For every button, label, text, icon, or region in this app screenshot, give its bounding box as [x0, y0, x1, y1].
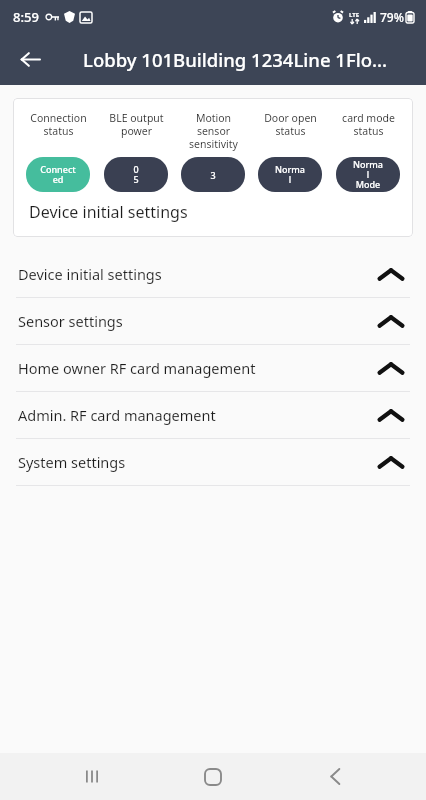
staticText: Device initial settings: [29, 201, 188, 223]
staticText: Connect ed: [40, 163, 76, 186]
button[interactable]: Norma l Mode: [336, 157, 400, 192]
staticText: card mode status: [342, 111, 395, 138]
staticText: Norma l: [275, 163, 305, 186]
button[interactable]: Norma l: [258, 157, 322, 192]
staticText: Motion sensor sensitivity: [189, 111, 238, 151]
button[interactable]: System settings: [0, 439, 426, 485]
button[interactable]: 0 5: [104, 157, 168, 192]
button[interactable]: Device initial settings: [0, 251, 426, 297]
button[interactable]: Home: [183, 753, 243, 800]
staticText: Device initial settings: [18, 264, 378, 284]
staticText: 0 5: [133, 163, 139, 186]
button[interactable]: Recents: [62, 753, 122, 800]
button[interactable]: Home owner RF card management: [0, 345, 426, 391]
staticText: Lobby 101Building 1234Line 1Flo...: [83, 47, 388, 72]
staticText: 8:59: [13, 8, 39, 26]
button[interactable]: Sensor settings: [0, 298, 426, 344]
button[interactable]: 3: [181, 157, 245, 192]
staticText: Admin. RF card management: [18, 405, 378, 425]
staticText: LTE: [349, 11, 360, 19]
button[interactable]: Back: [10, 39, 50, 79]
staticText: Connection status: [30, 111, 87, 138]
staticText: 3: [210, 169, 216, 181]
button[interactable]: Connect ed: [26, 157, 90, 192]
staticText: Sensor settings: [18, 311, 378, 331]
staticText: Norma l Mode: [353, 158, 383, 191]
staticText: Door open status: [264, 111, 317, 138]
staticText: System settings: [18, 452, 378, 472]
button[interactable]: Admin. RF card management: [0, 392, 426, 438]
button[interactable]: Back: [305, 753, 365, 800]
staticText: Home owner RF card management: [18, 358, 378, 378]
staticText: BLE output power: [109, 111, 164, 138]
staticText: 79%: [380, 9, 404, 25]
